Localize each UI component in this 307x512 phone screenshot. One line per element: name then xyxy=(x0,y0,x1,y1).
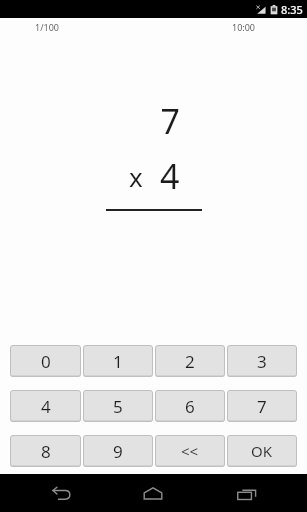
staticText: 5 xyxy=(113,395,123,418)
staticText: 3 xyxy=(257,350,267,373)
staticText: 8 xyxy=(41,440,51,463)
staticText: x xyxy=(129,159,143,194)
button[interactable]: 5 xyxy=(83,390,153,422)
staticText: 2 xyxy=(185,350,195,373)
button[interactable]: Recent apps xyxy=(231,478,261,508)
staticText: 10:00 xyxy=(232,21,256,33)
button[interactable]: 8 xyxy=(10,435,81,467)
staticText: 0 xyxy=(41,350,51,373)
button[interactable]: 0 xyxy=(10,345,81,377)
staticText: 1 xyxy=(113,350,123,373)
button[interactable]: 1 xyxy=(83,345,153,377)
button[interactable]: 9 xyxy=(83,435,153,467)
staticText: 4 xyxy=(160,153,180,199)
staticText: 1/100 xyxy=(35,21,59,33)
staticText: 8:35 xyxy=(281,2,303,17)
button[interactable]: 4 xyxy=(10,390,81,422)
button[interactable]: 3 xyxy=(227,345,297,377)
button[interactable]: << xyxy=(155,435,225,467)
staticText: 7 xyxy=(160,98,180,144)
staticText: OK xyxy=(251,441,273,461)
button[interactable]: 6 xyxy=(155,390,225,422)
staticText: 6 xyxy=(185,395,195,418)
staticText: 9 xyxy=(113,440,123,463)
button[interactable]: Home xyxy=(138,478,168,508)
button[interactable]: 7 xyxy=(227,390,297,422)
button[interactable]: OK xyxy=(227,435,297,467)
staticText: 4 xyxy=(41,395,51,418)
button[interactable]: 2 xyxy=(155,345,225,377)
staticText: << xyxy=(181,441,199,461)
button[interactable]: Back xyxy=(46,478,76,508)
staticText: 7 xyxy=(257,395,267,418)
